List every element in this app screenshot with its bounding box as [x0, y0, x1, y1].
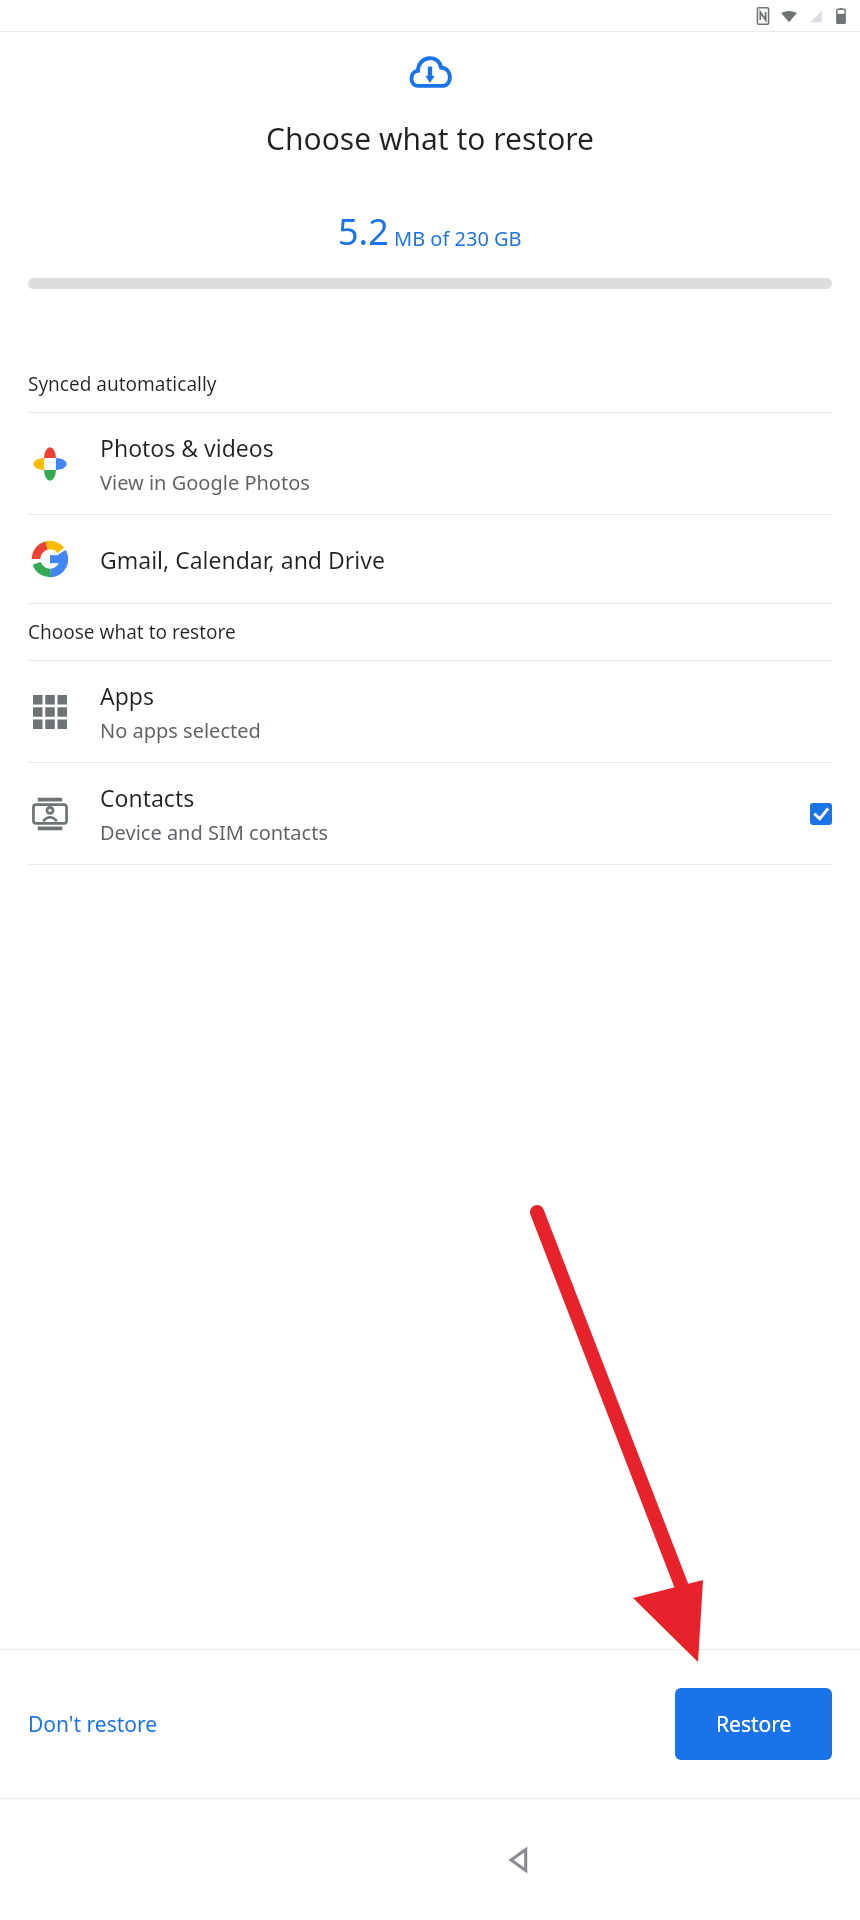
staticText: MB of 230 GB [394, 225, 522, 252]
staticText: 5.2 [338, 207, 389, 256]
staticText: Don't restore [28, 1710, 158, 1739]
staticText: Synced automatically [28, 371, 217, 397]
staticText: Photos & videos [100, 432, 274, 463]
button[interactable]: Back [492, 1832, 548, 1888]
button[interactable]: Apps [0, 661, 860, 762]
button[interactable]: Restore [675, 1688, 832, 1760]
staticText: Device and SIM contacts [100, 819, 328, 846]
staticText: Apps [100, 680, 155, 711]
button[interactable]: Contacts selected [810, 803, 832, 825]
staticText: View in Google Photos [100, 469, 310, 496]
button[interactable]: Don't restore [20, 1700, 166, 1749]
staticText: Choose what to restore [28, 619, 236, 645]
staticText: Gmail, Calendar, and Drive [100, 544, 385, 575]
staticText: No apps selected [100, 717, 261, 744]
staticText: Choose what to restore [0, 118, 860, 159]
button[interactable]: Gmail, Calendar, and Drive [0, 515, 860, 603]
staticText: Restore [716, 1710, 792, 1739]
staticText: Contacts [100, 782, 195, 813]
button[interactable]: Contacts [0, 763, 860, 864]
button[interactable]: Photos & videos [0, 413, 860, 514]
